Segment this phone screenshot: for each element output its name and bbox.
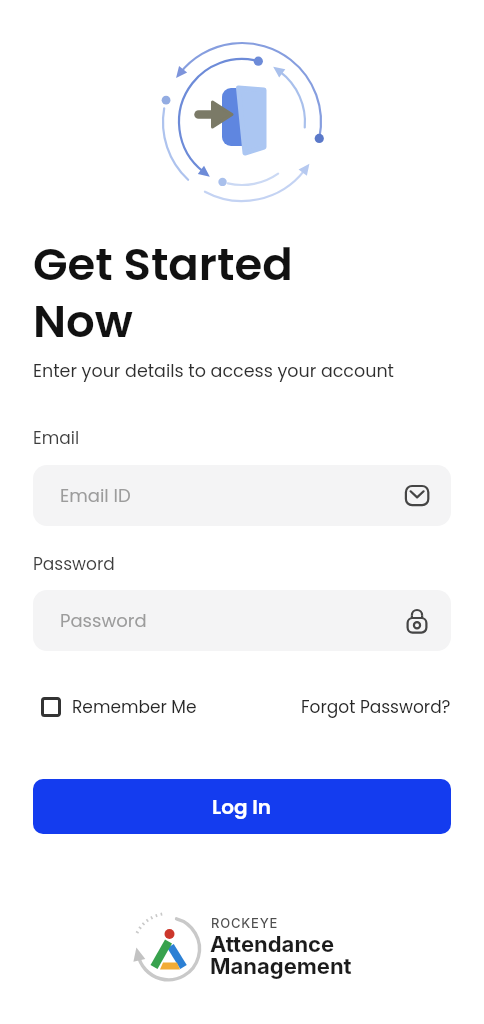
staticText: Email ID — [60, 483, 131, 508]
button[interactable]: Remember Me — [41, 695, 197, 719]
button[interactable]: Log In — [33, 779, 451, 834]
button[interactable]: Forgot Password? — [301, 695, 451, 719]
button[interactable]: Email ID — [33, 465, 451, 526]
button[interactable]: Password — [33, 590, 451, 651]
staticText: Email — [33, 426, 80, 450]
staticText: Log In — [212, 793, 272, 821]
staticText: Attendance — [210, 931, 335, 958]
staticText: Get Started — [33, 233, 293, 296]
staticText: Remember Me — [72, 695, 197, 719]
staticText: Enter your details to access your accoun… — [33, 359, 394, 384]
staticText: Now — [33, 290, 133, 353]
staticText: Management — [210, 953, 352, 980]
staticText: ROCKEYE — [211, 915, 279, 931]
staticText: Password — [33, 552, 115, 576]
staticText: Password — [60, 608, 147, 633]
